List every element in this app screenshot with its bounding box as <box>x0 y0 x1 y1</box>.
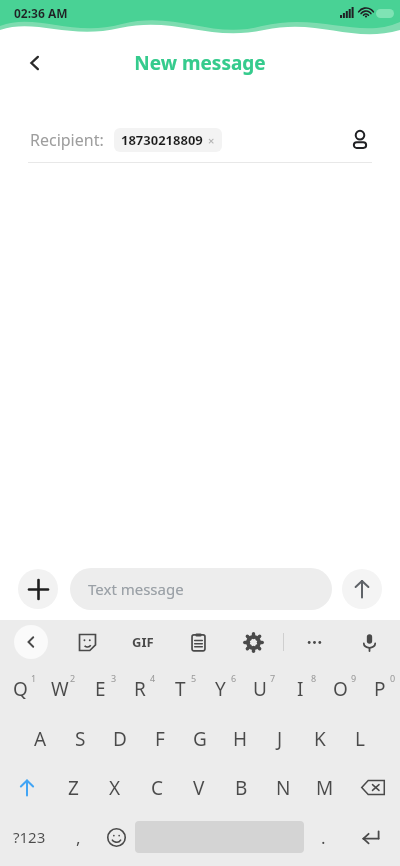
button[interactable]: O <box>320 664 360 714</box>
staticText: V <box>193 775 205 801</box>
button[interactable]: Text message <box>70 568 332 610</box>
button[interactable]: , <box>59 812 97 862</box>
button[interactable]: A <box>20 714 60 763</box>
button[interactable]: T <box>160 664 200 714</box>
staticText: 9 <box>351 672 357 684</box>
staticText: 02:36 AM <box>14 5 68 21</box>
button[interactable]: F <box>140 714 180 763</box>
staticText: × <box>208 133 215 148</box>
button[interactable]: Settings <box>236 625 270 659</box>
button[interactable]: . <box>304 812 342 862</box>
button[interactable]: ?123 <box>0 812 59 862</box>
button[interactable]: Clipboard <box>181 625 215 659</box>
staticText: 8 <box>311 672 317 684</box>
button[interactable]: D <box>100 714 140 763</box>
button[interactable]: Emoji <box>97 812 135 862</box>
staticText: Z <box>68 775 79 801</box>
staticText: 0 <box>390 672 396 684</box>
button[interactable]: GIF <box>126 625 160 659</box>
staticText: 5 <box>191 672 197 684</box>
staticText: 3 <box>111 672 117 684</box>
staticText: Q <box>13 676 28 702</box>
staticText: R <box>134 676 146 702</box>
staticText: N <box>276 775 291 801</box>
button[interactable]: Y <box>200 664 240 714</box>
button[interactable]: N <box>262 763 304 812</box>
staticText: H <box>233 726 248 752</box>
staticText: B <box>235 775 248 801</box>
staticText: M <box>316 775 334 801</box>
staticText: 18730218809 <box>121 131 203 149</box>
button[interactable]: Voice input <box>352 625 386 659</box>
staticText: I <box>297 676 304 702</box>
button[interactable]: B <box>220 763 262 812</box>
button[interactable]: I <box>280 664 320 714</box>
staticText: J <box>277 726 283 752</box>
staticText: S <box>75 726 86 752</box>
staticText: Y <box>215 676 226 702</box>
staticText: , <box>76 826 81 849</box>
staticText: G <box>193 726 207 752</box>
staticText: A <box>34 726 47 752</box>
button[interactable]: Shift <box>0 763 53 812</box>
staticText: W <box>51 676 69 702</box>
button[interactable]: U <box>240 664 280 714</box>
staticText: D <box>113 726 127 752</box>
staticText: K <box>314 726 326 752</box>
button[interactable]: Enter <box>342 812 400 862</box>
staticText: 7 <box>270 672 276 684</box>
staticText: U <box>253 676 267 702</box>
staticText: 6 <box>231 672 237 684</box>
staticText: C <box>151 775 164 801</box>
staticText: GIF <box>132 633 154 651</box>
button[interactable]: Q <box>0 664 40 714</box>
button[interactable]: Send <box>342 569 382 609</box>
button[interactable]: M <box>304 763 346 812</box>
button[interactable]: Choose contact <box>342 122 378 158</box>
button[interactable]: P <box>360 664 400 714</box>
button[interactable]: G <box>180 714 220 763</box>
staticText: X <box>109 775 121 801</box>
staticText: 4 <box>150 672 156 684</box>
staticText: 1 <box>31 672 37 684</box>
button[interactable]: Collapse toolbar <box>14 625 48 659</box>
staticText: F <box>155 726 165 752</box>
button[interactable]: Backspace <box>346 763 400 812</box>
staticText: New message <box>0 50 400 76</box>
staticText: O <box>333 676 348 702</box>
staticText: Text message <box>88 579 184 599</box>
button[interactable]: H <box>220 714 260 763</box>
button[interactable]: S <box>60 714 100 763</box>
button[interactable]: Add attachment <box>18 569 58 609</box>
button[interactable]: J <box>260 714 300 763</box>
staticText: L <box>355 726 365 752</box>
staticText: . <box>321 826 326 849</box>
button[interactable]: V <box>178 763 220 812</box>
staticText: 2 <box>70 672 76 684</box>
staticText: Recipient: <box>30 129 104 151</box>
button[interactable]: 18730218809 <box>114 128 222 152</box>
staticText: E <box>95 676 106 702</box>
button[interactable]: K <box>300 714 340 763</box>
button[interactable]: Stickers <box>70 625 104 659</box>
button[interactable]: W <box>40 664 80 714</box>
button[interactable]: Back <box>16 44 54 82</box>
button[interactable]: C <box>136 763 178 812</box>
button[interactable]: Z <box>53 763 94 812</box>
button[interactable]: More options <box>297 625 331 659</box>
button[interactable]: L <box>340 714 380 763</box>
button[interactable]: E <box>80 664 120 714</box>
button[interactable]: R <box>120 664 160 714</box>
staticText: ?123 <box>13 827 46 847</box>
staticText: T <box>175 676 186 702</box>
button[interactable]: X <box>94 763 136 812</box>
staticText: P <box>374 676 386 702</box>
